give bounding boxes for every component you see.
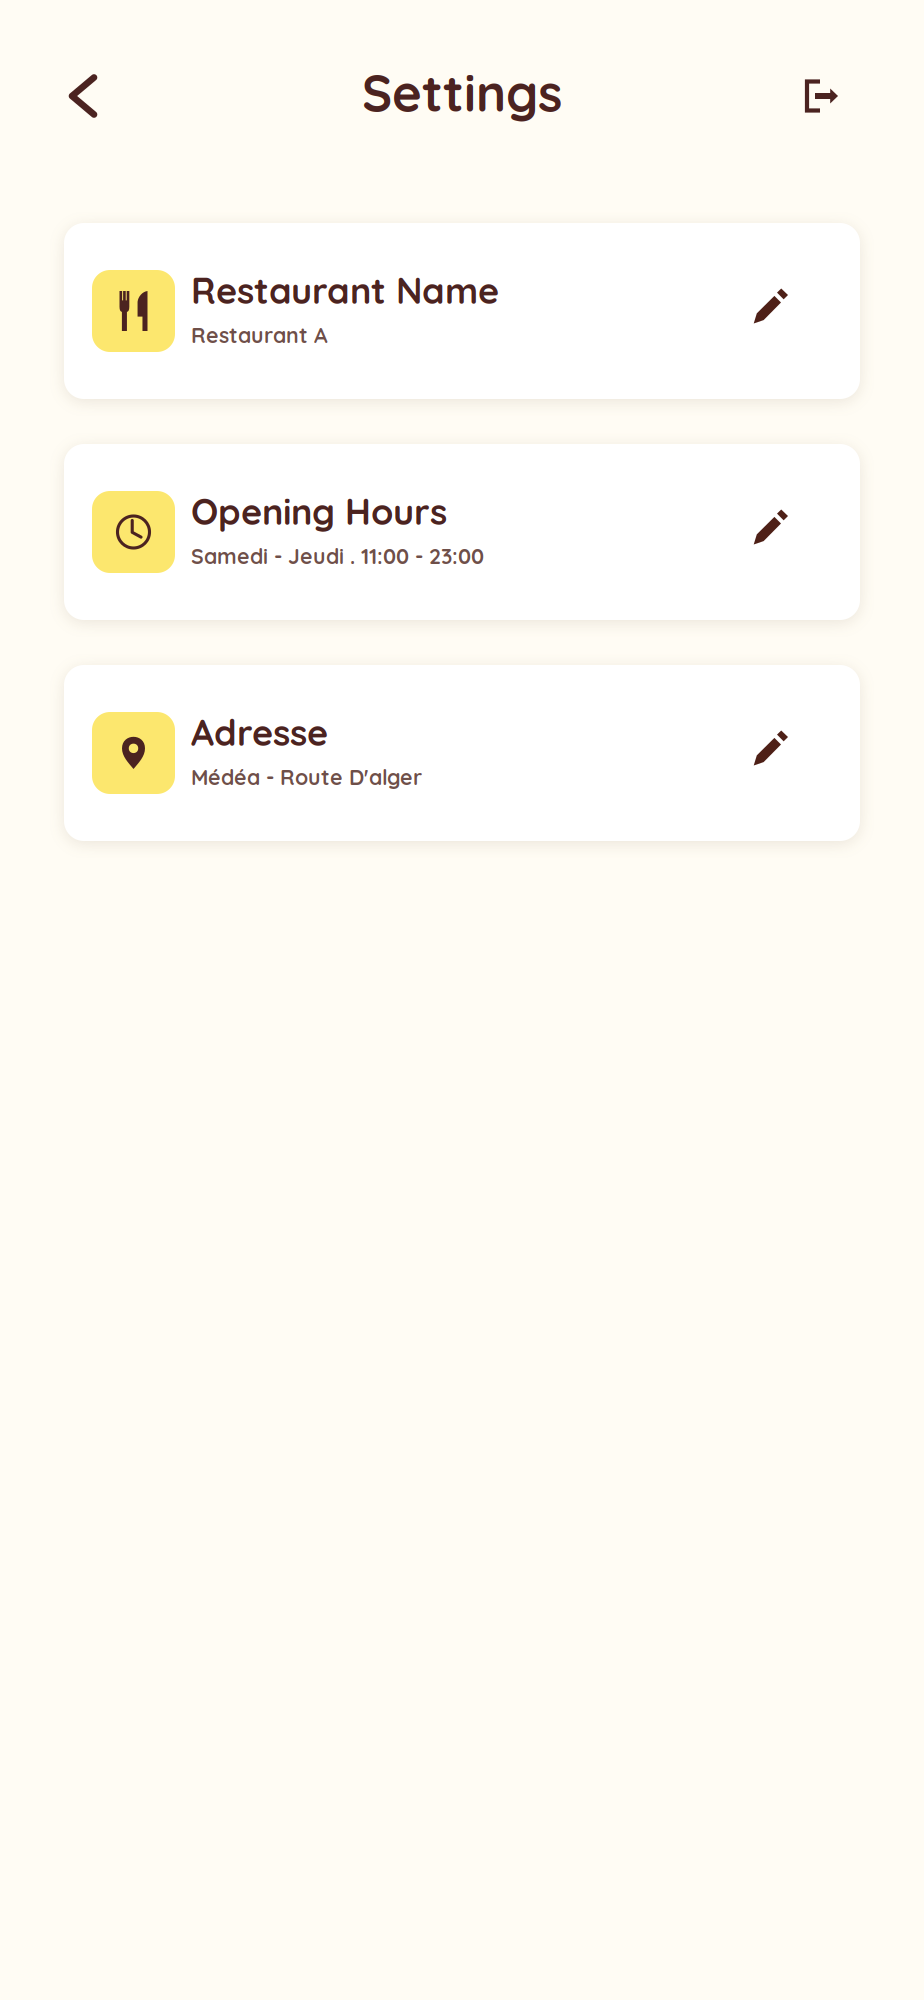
button[interactable]: Sign out [775, 51, 924, 140]
button[interactable]: Back [0, 49, 124, 142]
staticText: Adresse [191, 710, 328, 755]
staticText: Médéa - Route D'alger [191, 764, 422, 790]
staticText: Settings [362, 61, 562, 124]
staticText: Opening Hours [191, 489, 447, 534]
button[interactable]: Adresse [64, 665, 860, 841]
staticText: Restaurant A [191, 322, 328, 348]
button[interactable]: Opening Hours [64, 444, 860, 620]
staticText: Restaurant Name [191, 268, 499, 313]
button[interactable]: Restaurant Name [64, 223, 860, 399]
staticText: Samedi - Jeudi . 11:00 - 23:00 [191, 543, 484, 569]
